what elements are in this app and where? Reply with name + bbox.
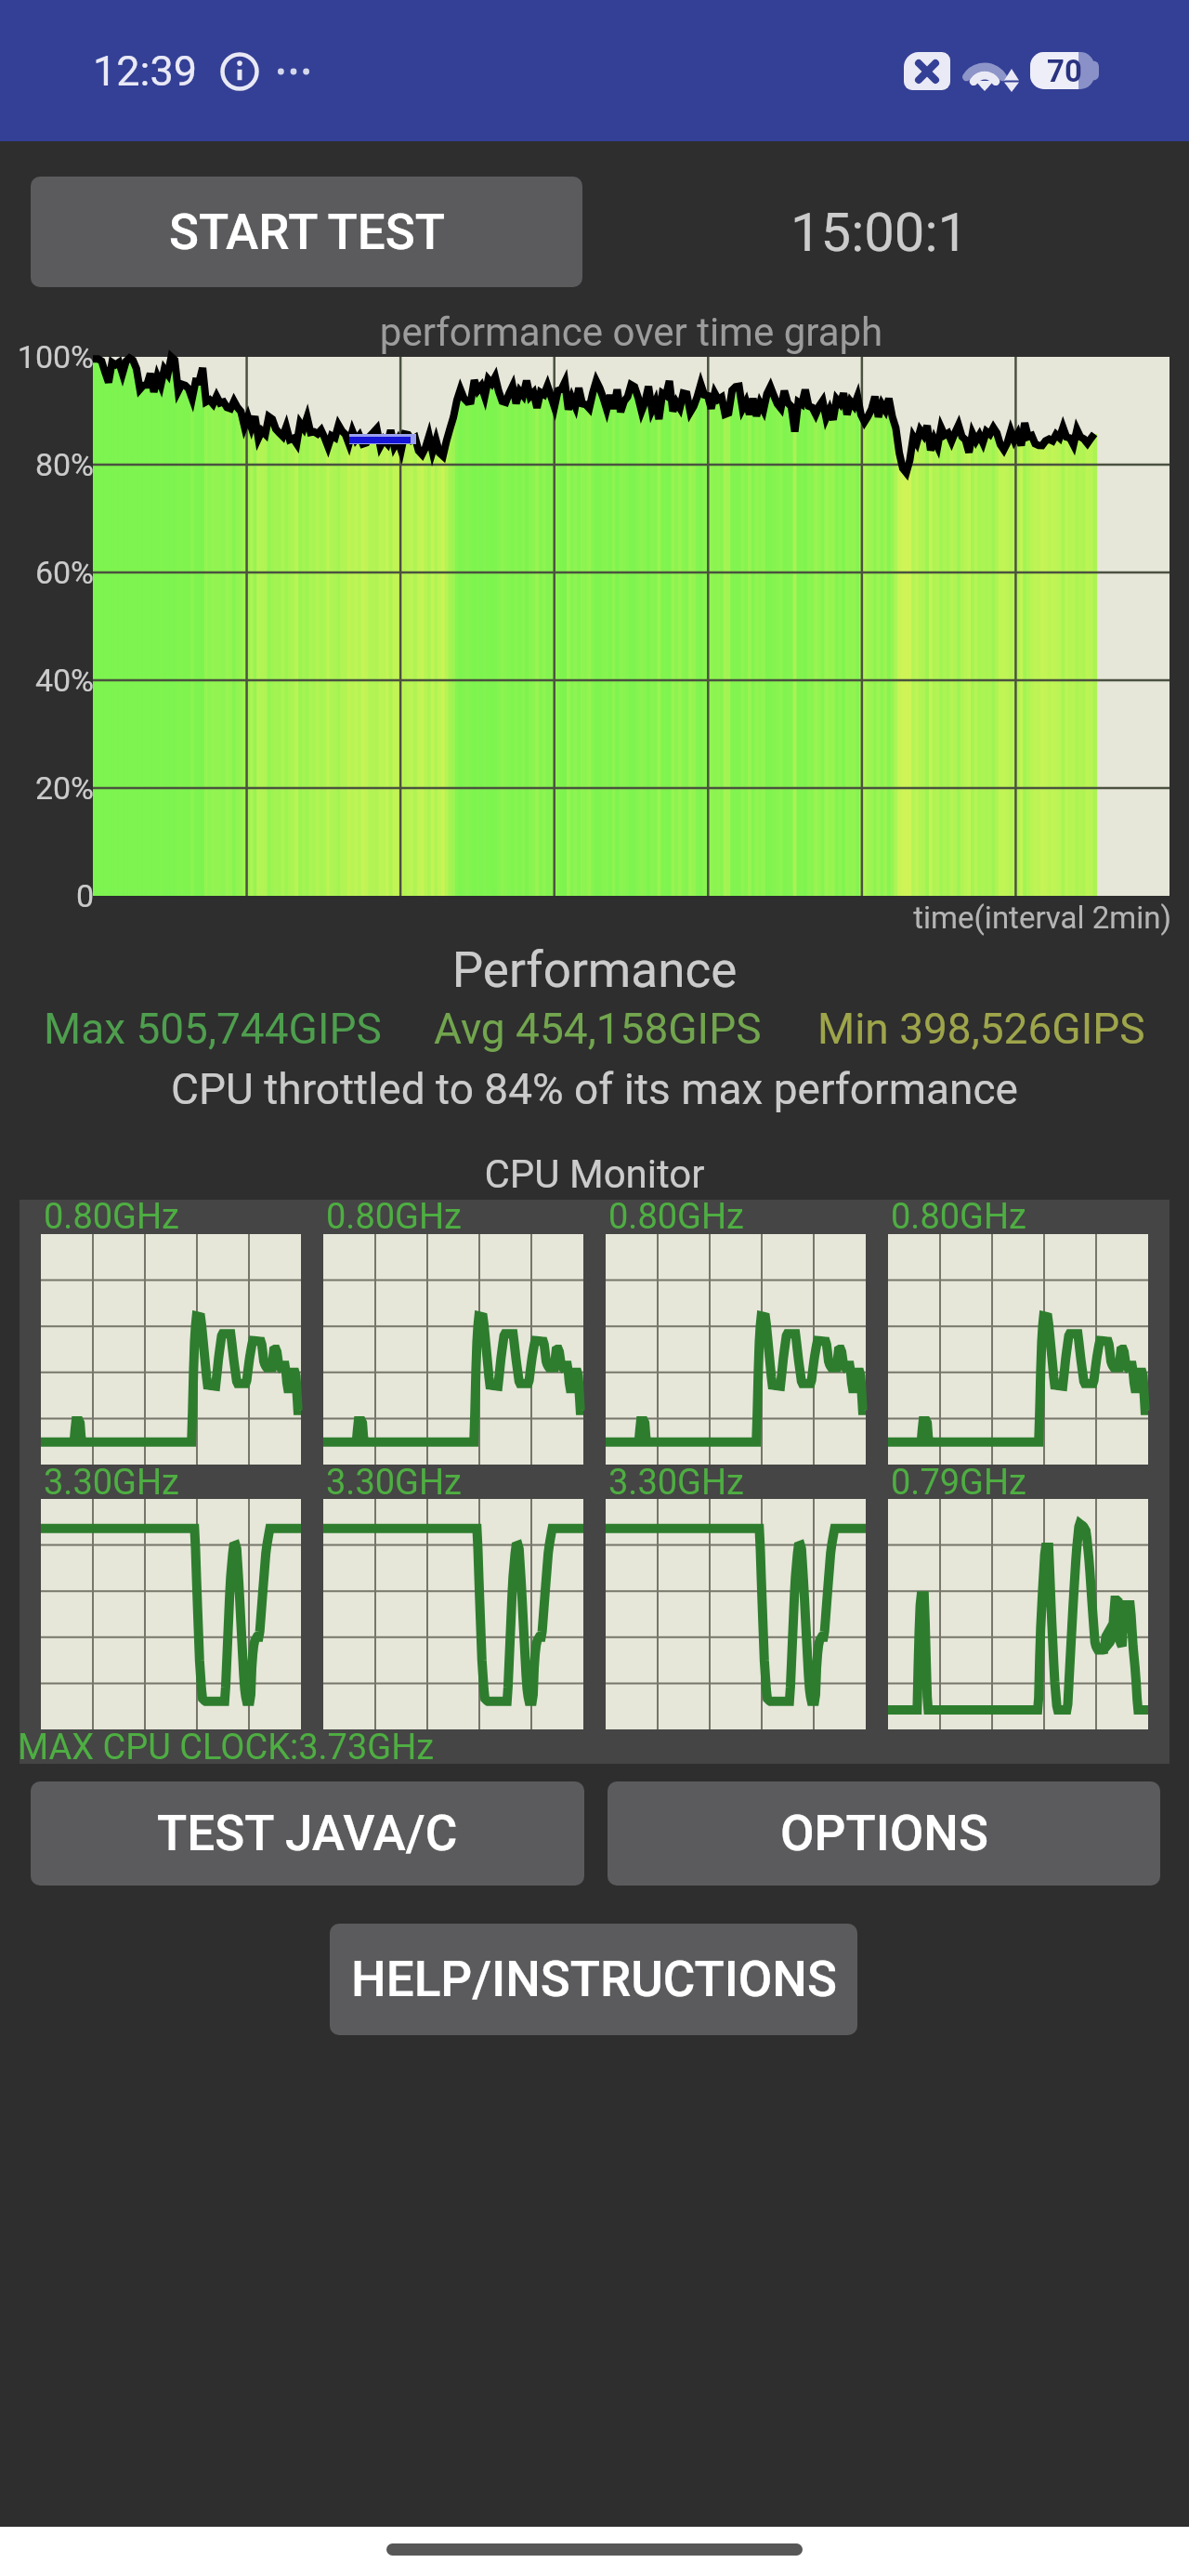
staticText: 60% (0, 554, 94, 591)
staticText: Avg 454,158GIPS (434, 1004, 762, 1054)
staticText: 3.30GHz (44, 1462, 179, 1504)
staticText: Min 398,526GIPS (817, 1004, 1145, 1054)
staticText: MAX CPU CLOCK:3.73GHz (18, 1727, 435, 1768)
staticText: CPU Monitor (0, 1151, 1189, 1197)
staticText: OPTIONS (780, 1805, 988, 1862)
staticText: 40% (0, 662, 94, 699)
staticText: START TEST (169, 204, 445, 261)
other: No SIM (904, 52, 950, 90)
staticText: 80% (0, 446, 94, 483)
staticText: HELP/INSTRUCTIONS (351, 1951, 837, 2008)
staticText: 3.30GHz (608, 1462, 744, 1504)
staticText: 0.80GHz (608, 1196, 744, 1238)
other: Info (220, 52, 259, 91)
staticText: 3.30GHz (326, 1462, 462, 1504)
button[interactable]: HELP/INSTRUCTIONS (330, 1924, 857, 2035)
staticText: 100% (0, 338, 94, 375)
staticText: 15:00:1 (790, 201, 969, 264)
staticText: Performance (0, 941, 1189, 999)
staticText: 0.79GHz (891, 1462, 1026, 1504)
staticText: Max 505,744GIPS (44, 1004, 382, 1054)
staticText: 12:39 (93, 46, 198, 96)
staticText: 70 (1047, 53, 1082, 89)
button[interactable]: START TEST (31, 177, 582, 287)
other: Home gesture (386, 2543, 803, 2556)
staticText: 0 (0, 877, 94, 914)
staticText: CPU throttled to 84% of its max performa… (0, 1064, 1189, 1114)
button[interactable]: TEST JAVA/C (31, 1781, 584, 1886)
staticText: 20% (0, 769, 94, 807)
button[interactable]: OPTIONS (608, 1781, 1160, 1886)
staticText: 0.80GHz (326, 1196, 462, 1238)
other: Wi-Fi (963, 49, 1021, 92)
staticText: 0.80GHz (891, 1196, 1026, 1238)
staticText: TEST JAVA/C (157, 1805, 458, 1862)
staticText: time(interval 2min) (780, 900, 1171, 936)
staticText: 0.80GHz (44, 1196, 179, 1238)
staticText: performance over time graph (93, 309, 1169, 355)
